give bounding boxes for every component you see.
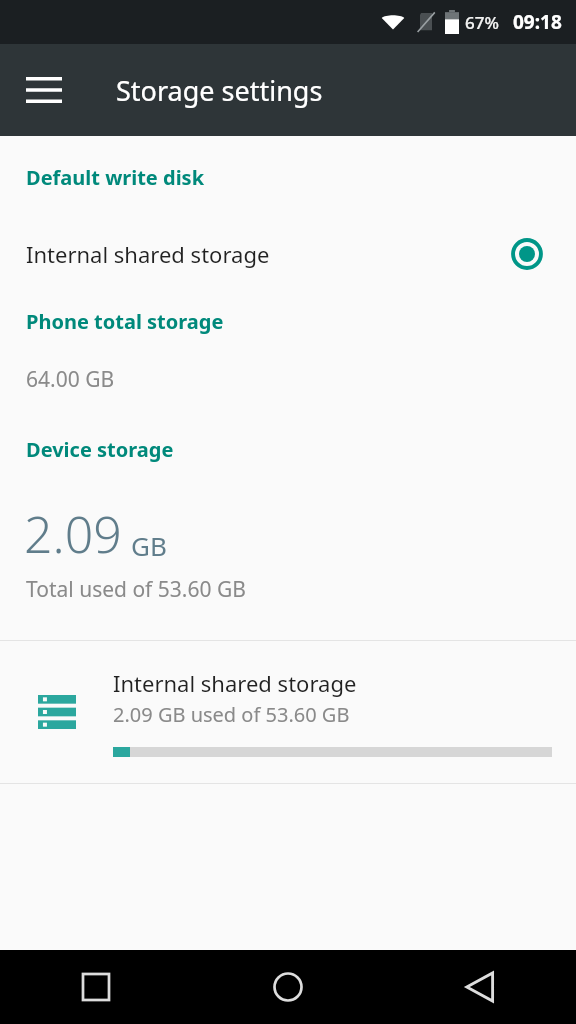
button[interactable]: Internal shared storage <box>0 641 576 783</box>
staticText: Total used of 53.60 GB <box>26 575 246 604</box>
staticText: Default write disk <box>26 164 205 191</box>
button[interactable]: Back <box>384 950 576 1024</box>
staticText: 64.00 GB <box>26 365 115 394</box>
staticText: Device storage <box>26 436 174 463</box>
staticText: Storage settings <box>116 72 323 109</box>
button[interactable]: Internal shared storage <box>0 223 576 285</box>
staticText: 2.09 GB used of 53.60 GB <box>113 701 350 728</box>
staticText: Phone total storage <box>26 308 224 335</box>
staticText: Internal shared storage <box>113 668 357 698</box>
button[interactable]: Home <box>192 950 384 1024</box>
staticText: 09:18 <box>513 9 562 35</box>
staticText: 2.09 <box>24 500 122 568</box>
button[interactable]: Recent apps <box>0 950 192 1024</box>
staticText: Internal shared storage <box>26 239 510 269</box>
staticText: 67% <box>465 11 499 34</box>
button[interactable]: Open navigation menu <box>8 54 80 126</box>
staticText: GB <box>131 528 167 563</box>
